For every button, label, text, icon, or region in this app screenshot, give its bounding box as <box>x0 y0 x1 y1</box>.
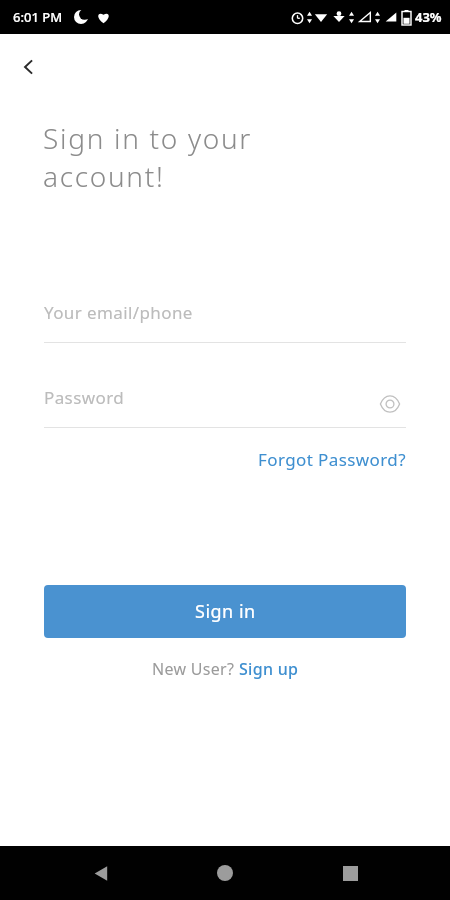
button[interactable]: Your email/phone <box>44 301 406 343</box>
staticText: account! <box>43 157 165 195</box>
button[interactable]: Sign up <box>239 658 299 680</box>
button[interactable]: Sign in <box>44 585 406 638</box>
staticText: New User? <box>152 658 239 680</box>
staticText: Sign in <box>195 599 256 624</box>
staticText: Password <box>44 386 125 409</box>
button[interactable]: Show password <box>374 388 406 420</box>
staticText: 6:01 PM <box>13 8 63 26</box>
staticText: Sign in to your <box>43 119 253 157</box>
button[interactable]: Home <box>201 849 249 897</box>
staticText: Forgot Password? <box>258 448 406 471</box>
button[interactable]: Recents <box>326 849 374 897</box>
staticText: Sign up <box>239 658 299 680</box>
staticText: 43% <box>415 8 442 26</box>
button[interactable]: Forgot Password? <box>254 444 410 475</box>
button[interactable]: Back <box>77 849 125 897</box>
staticText: Your email/phone <box>44 301 193 324</box>
button[interactable]: Back <box>7 45 51 89</box>
